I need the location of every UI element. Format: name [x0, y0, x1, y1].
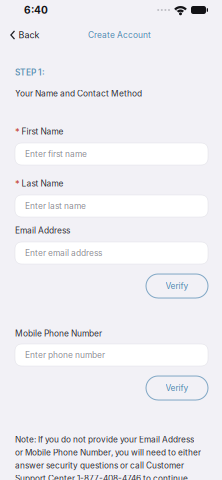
- button[interactable]: Verify: [146, 274, 208, 298]
- staticText: STEP 1:: [15, 67, 45, 78]
- staticText: Email Address: [15, 225, 70, 236]
- staticText: Mobile Phone Number: [15, 328, 102, 339]
- staticText: *: [15, 178, 20, 189]
- staticText: Your Name and Contact Method: [15, 88, 142, 99]
- staticText: or Mobile Phone Number, you will need to…: [15, 447, 201, 457]
- staticText: Back: [18, 30, 39, 40]
- staticText: Enter last name: [25, 201, 86, 211]
- staticText: Last Name: [21, 178, 63, 189]
- staticText: Enter first name: [25, 149, 87, 159]
- staticText: 6:40: [24, 4, 48, 16]
- staticText: Verify: [165, 281, 188, 291]
- button[interactable]: Create Account: [80, 24, 159, 46]
- button[interactable]: Verify: [146, 376, 208, 400]
- staticText: *: [15, 126, 20, 137]
- staticText: Enter email address: [25, 248, 102, 258]
- staticText: Enter phone number: [25, 350, 105, 360]
- staticText: Note: If you do not provide your Email A…: [15, 434, 194, 444]
- staticText: answer security questions or call Custom…: [15, 460, 184, 470]
- staticText: Verify: [165, 383, 188, 393]
- staticText: Support Center 1-877-408-4746 to continu…: [15, 473, 190, 480]
- staticText: First Name: [21, 126, 63, 137]
- button[interactable]: Back: [1, 24, 49, 46]
- staticText: Create Account: [88, 30, 151, 40]
